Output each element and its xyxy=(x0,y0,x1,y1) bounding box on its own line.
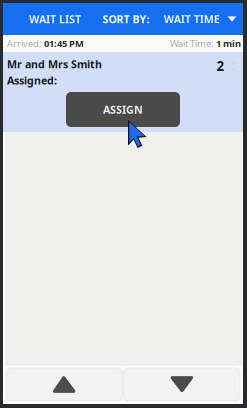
staticText: ASSIGN xyxy=(103,102,143,117)
staticText: 1 min xyxy=(216,37,241,50)
staticText: Wait Time: xyxy=(170,37,216,50)
button[interactable]: Next xyxy=(124,368,240,401)
staticText: WAIT TIME xyxy=(164,12,220,26)
staticText: SORT BY: xyxy=(102,12,149,26)
staticText: 2 xyxy=(217,57,225,75)
button[interactable]: WAIT LIST xyxy=(25,3,85,35)
staticText: Arrived: xyxy=(7,37,44,50)
staticText: 01:45 PM xyxy=(44,37,84,50)
staticText: Assigned: xyxy=(7,73,57,87)
staticText: WAIT LIST xyxy=(29,12,81,26)
button[interactable]: Previous xyxy=(6,368,122,401)
staticText: Mr and Mrs Smith xyxy=(7,57,102,71)
button[interactable]: WAIT TIME xyxy=(161,3,239,35)
button[interactable]: ASSIGN xyxy=(66,92,180,127)
